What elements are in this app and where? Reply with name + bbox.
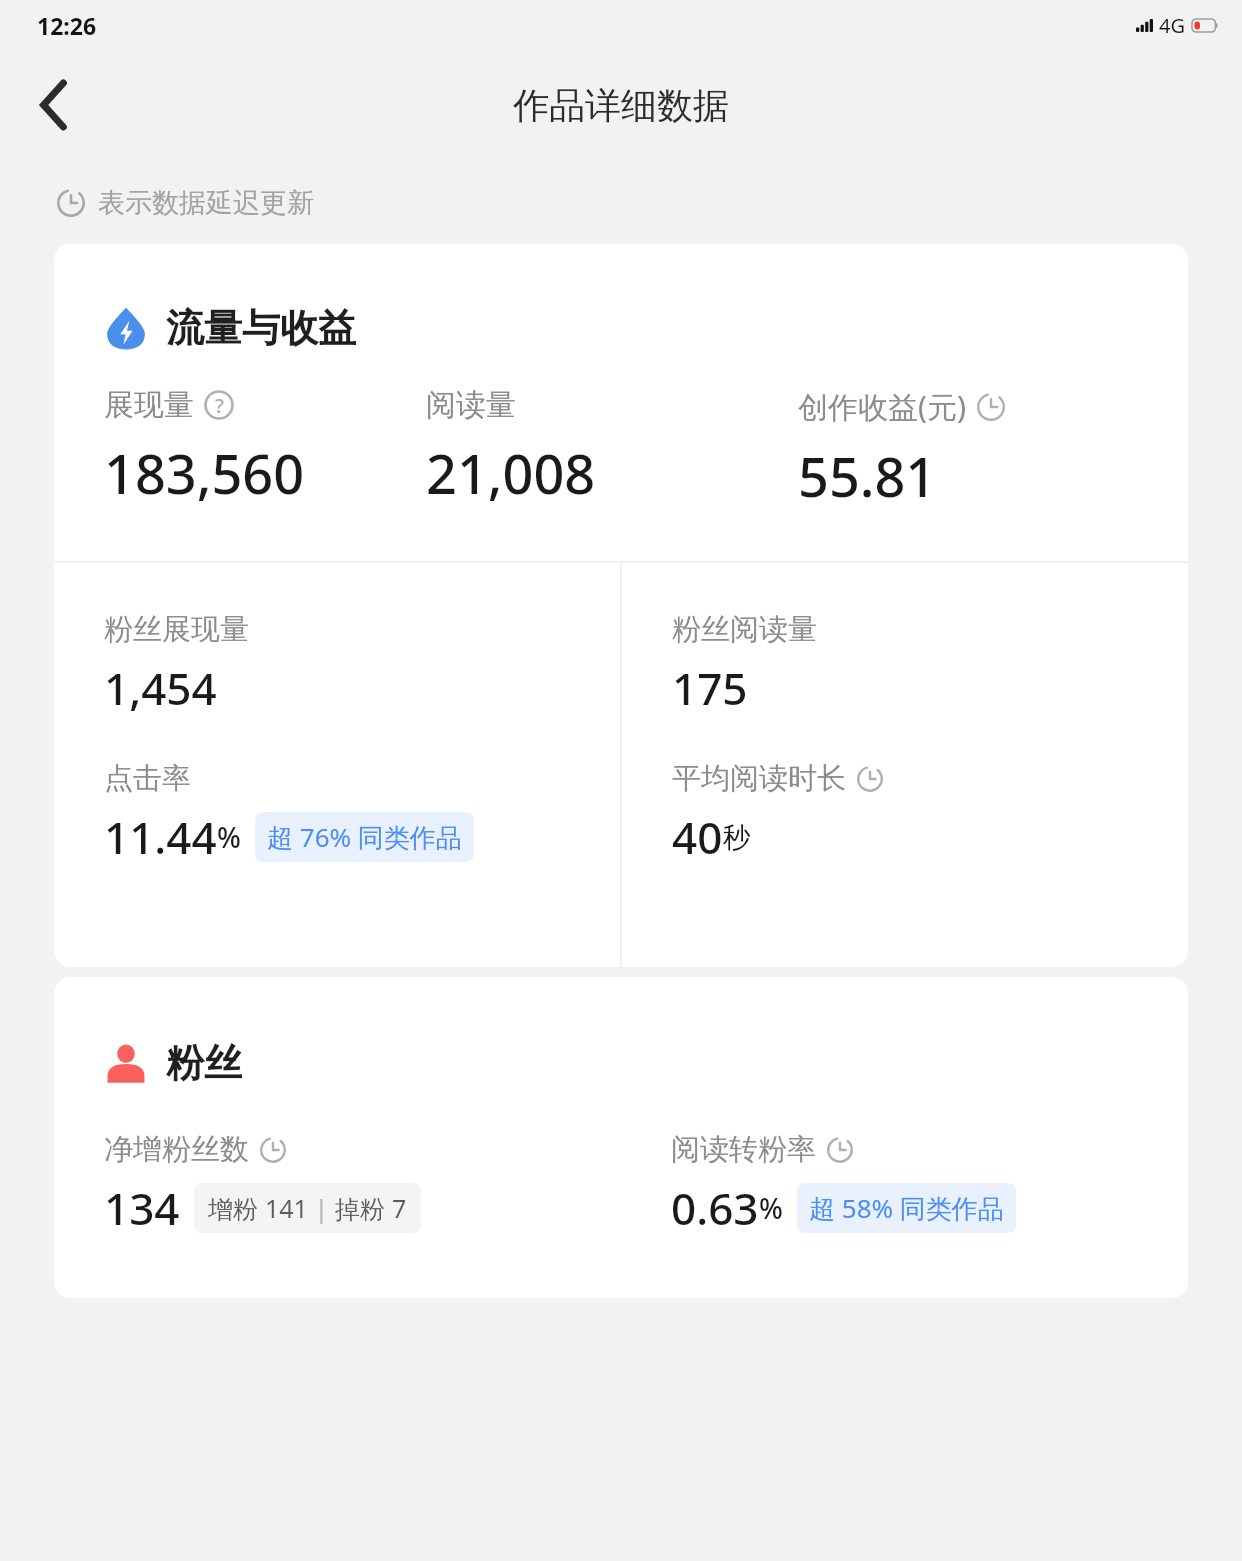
staticText: 创作收益(元)	[798, 386, 966, 427]
staticText: 增粉	[208, 1191, 265, 1225]
button[interactable]: 粉丝展现量	[104, 611, 249, 718]
button[interactable]: 展现量	[104, 386, 426, 510]
button[interactable]: 粉丝阅读量	[672, 611, 817, 718]
staticText: 134	[104, 1178, 180, 1238]
button[interactable]: 阅读量	[426, 386, 798, 510]
button[interactable]: 平均阅读时长	[672, 760, 884, 867]
staticText: 12:26	[37, 10, 97, 41]
staticText: 超 58% 同类作品	[809, 1190, 1004, 1226]
staticText: 141	[265, 1191, 308, 1225]
staticText: 4G	[1159, 12, 1185, 39]
staticText: 粉丝	[166, 1039, 242, 1087]
staticText: 阅读量	[426, 386, 516, 424]
staticText: 粉丝阅读量	[672, 611, 817, 648]
button[interactable]: 点击率	[104, 760, 474, 867]
staticText: 40	[672, 807, 723, 867]
staticText: 183,560	[104, 436, 305, 510]
button[interactable]: 净增粉丝数	[104, 1131, 421, 1238]
staticText: %	[759, 1189, 783, 1227]
staticText: 0.63	[671, 1178, 759, 1238]
staticText: 平均阅读时长	[672, 760, 846, 797]
button[interactable]: 阅读转粉率	[671, 1131, 1016, 1238]
staticText: 秒	[723, 820, 751, 855]
staticText: 净增粉丝数	[104, 1131, 249, 1168]
staticText: 11.44	[104, 807, 217, 867]
staticText: ?	[215, 392, 224, 419]
staticText: 7	[392, 1191, 407, 1225]
staticText: 点击率	[104, 760, 191, 797]
staticText: 超 76% 同类作品	[267, 819, 462, 855]
staticText: 55.81	[798, 439, 937, 513]
staticText: |	[308, 1191, 335, 1225]
staticText: 掉粉	[335, 1191, 392, 1225]
staticText: 表示数据延迟更新	[98, 186, 314, 220]
staticText: 1,454	[104, 658, 217, 718]
staticText: 阅读转粉率	[671, 1131, 816, 1168]
staticText: 175	[672, 658, 748, 718]
staticText: 作品详细数据	[513, 83, 729, 128]
staticText: 流量与收益	[166, 304, 356, 352]
button[interactable]: Back	[20, 71, 88, 139]
staticText: 展现量	[104, 386, 194, 424]
staticText: 粉丝展现量	[104, 611, 249, 648]
staticText: %	[217, 818, 241, 856]
staticText: 21,008	[426, 436, 596, 510]
button[interactable]: 创作收益(元)	[798, 386, 1188, 513]
